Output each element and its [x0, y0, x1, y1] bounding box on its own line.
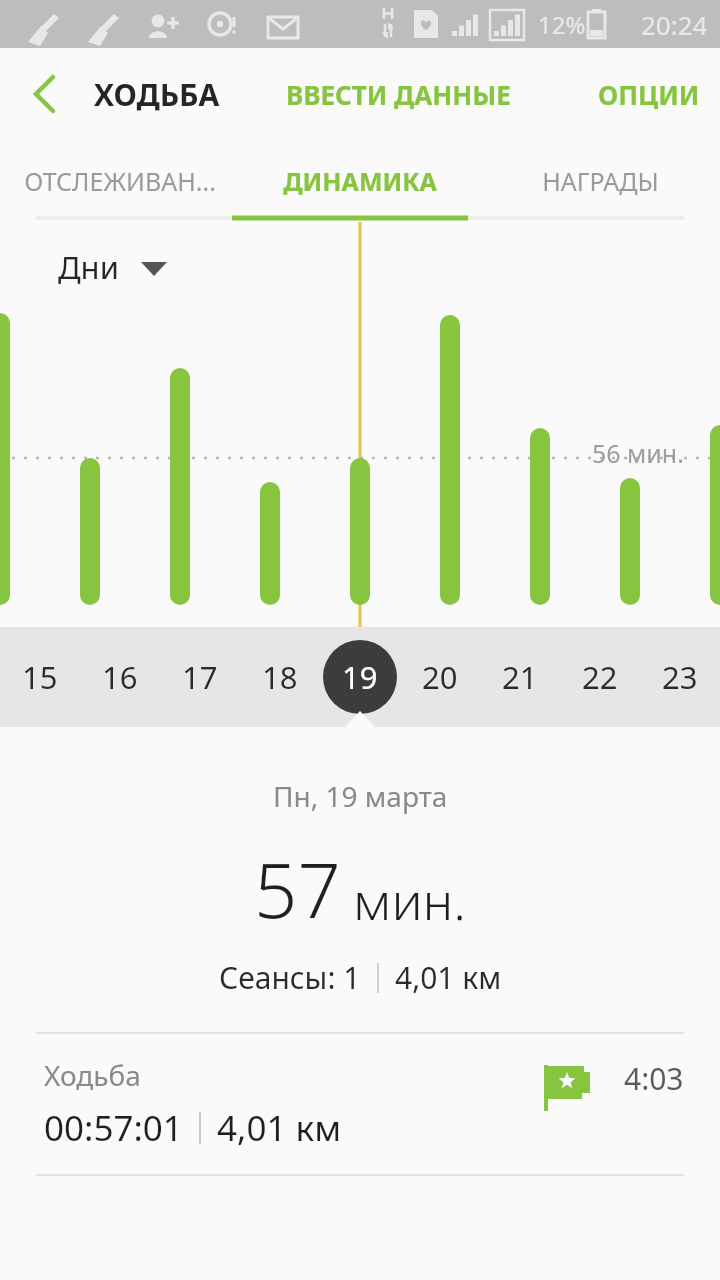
button[interactable]: НАГРАДЫ: [480, 140, 720, 222]
staticText: 12%: [538, 8, 586, 41]
button[interactable]: 19: [320, 627, 400, 727]
staticText: ДИНАМИКА: [283, 164, 437, 198]
button[interactable]: ОПЦИИ: [592, 63, 706, 126]
staticText: ВВЕСТИ ДАННЫЕ: [286, 77, 511, 112]
button[interactable]: Дни: [50, 240, 175, 294]
staticText: Ходьба: [44, 1056, 141, 1094]
staticText: мин.: [353, 864, 467, 935]
staticText: 18: [262, 656, 298, 698]
button[interactable]: Ходьба: [0, 1034, 720, 1174]
staticText: Сеансы: 1: [219, 957, 361, 998]
button[interactable]: 23: [640, 627, 720, 727]
staticText: 4:03: [624, 1058, 684, 1099]
staticText: 00:57:01: [44, 1104, 183, 1152]
staticText: 4,01 км: [395, 957, 502, 998]
button[interactable]: 16: [80, 627, 160, 727]
staticText: 16: [102, 656, 138, 698]
button[interactable]: 20: [400, 627, 480, 727]
staticText: 4,01 км: [217, 1104, 342, 1152]
staticText: 56 мин.: [592, 436, 684, 470]
button[interactable]: ВВЕСТИ ДАННЫЕ: [280, 63, 517, 126]
button[interactable]: Back: [14, 64, 74, 124]
button[interactable]: 15: [0, 627, 80, 727]
button[interactable]: 18: [240, 627, 320, 727]
staticText: 20:24: [641, 7, 708, 42]
button[interactable]: 22: [560, 627, 640, 727]
staticText: 57: [254, 837, 341, 941]
staticText: 17: [182, 656, 218, 698]
staticText: Дни: [58, 246, 119, 288]
button[interactable]: 21: [480, 627, 560, 727]
staticText: Пн, 19 марта: [273, 777, 448, 815]
button[interactable]: ОТСЛЕЖИВАН...: [0, 140, 240, 222]
staticText: 22: [582, 656, 618, 698]
staticText: 20: [422, 656, 458, 698]
staticText: 23: [662, 656, 698, 698]
staticText: НАГРАДЫ: [542, 164, 659, 198]
staticText: ХОДЬБА: [94, 74, 220, 115]
staticText: 19: [342, 656, 378, 698]
staticText: ОТСЛЕЖИВАН...: [24, 164, 216, 198]
other: Goal reached: [540, 1059, 580, 1099]
button[interactable]: ДИНАМИКА: [240, 140, 480, 222]
staticText: ОПЦИИ: [598, 77, 700, 112]
staticText: 21: [502, 656, 538, 698]
button[interactable]: 17: [160, 627, 240, 727]
staticText: 15: [22, 656, 58, 698]
